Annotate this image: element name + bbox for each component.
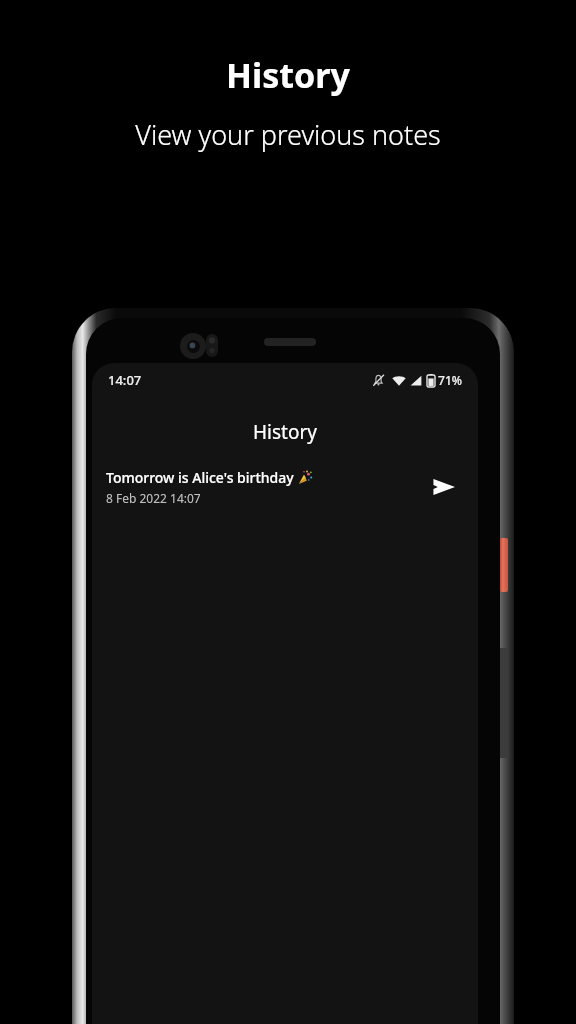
button[interactable]: Send note — [424, 467, 464, 507]
staticText: 71% — [438, 372, 462, 388]
staticText: 8 Feb 2022 14:07 — [106, 490, 201, 506]
staticText: View your previous notes — [135, 116, 441, 153]
staticText: History — [253, 419, 317, 445]
staticText: Tomorrow is Alice's birthday — [106, 468, 298, 487]
staticText: History — [226, 52, 350, 98]
staticText: 14:07 — [108, 371, 142, 389]
button[interactable]: Tomorrow is Alice's birthday — [92, 461, 478, 513]
